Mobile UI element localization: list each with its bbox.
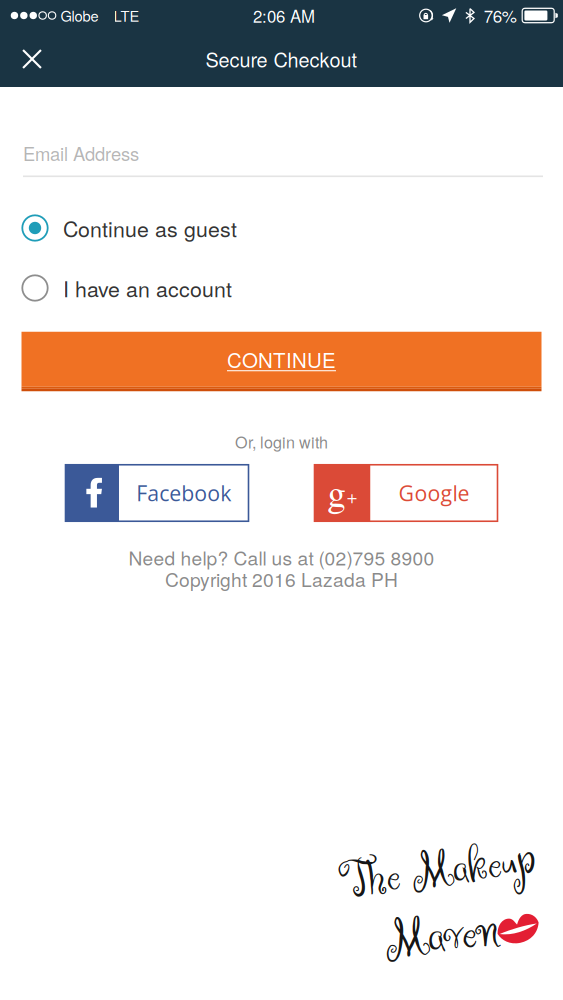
staticText: The Makeup	[341, 839, 537, 904]
staticText: Email Address	[23, 140, 139, 166]
button[interactable]: Close	[0, 31, 64, 87]
staticText: Globe	[60, 5, 98, 26]
staticText: Google	[398, 478, 469, 508]
button[interactable]: g	[314, 465, 497, 521]
staticText: Copyright 2016 Lazada PH	[165, 565, 398, 592]
staticText: Need help? Call us at (02)795 8900	[128, 543, 434, 571]
button[interactable]: Continue as guest	[0, 201, 563, 255]
staticText: +	[347, 483, 358, 508]
staticText: Continue as guest	[63, 213, 237, 243]
staticText: Or, login with	[235, 430, 328, 453]
staticText: Maven	[385, 903, 499, 971]
button[interactable]: I have an account	[0, 261, 563, 315]
button[interactable]: CONTINUE	[21, 332, 541, 391]
staticText: LTE	[113, 5, 139, 26]
staticText: g	[327, 467, 346, 516]
button[interactable]: Facebook	[65, 465, 248, 521]
staticText: 2:06 AM	[253, 3, 315, 28]
staticText: Facebook	[136, 478, 231, 508]
staticText: Secure Checkout	[205, 45, 357, 73]
staticText: 76%	[484, 3, 517, 28]
staticText: I have an account	[63, 273, 232, 303]
staticText: CONTINUE	[227, 344, 336, 374]
